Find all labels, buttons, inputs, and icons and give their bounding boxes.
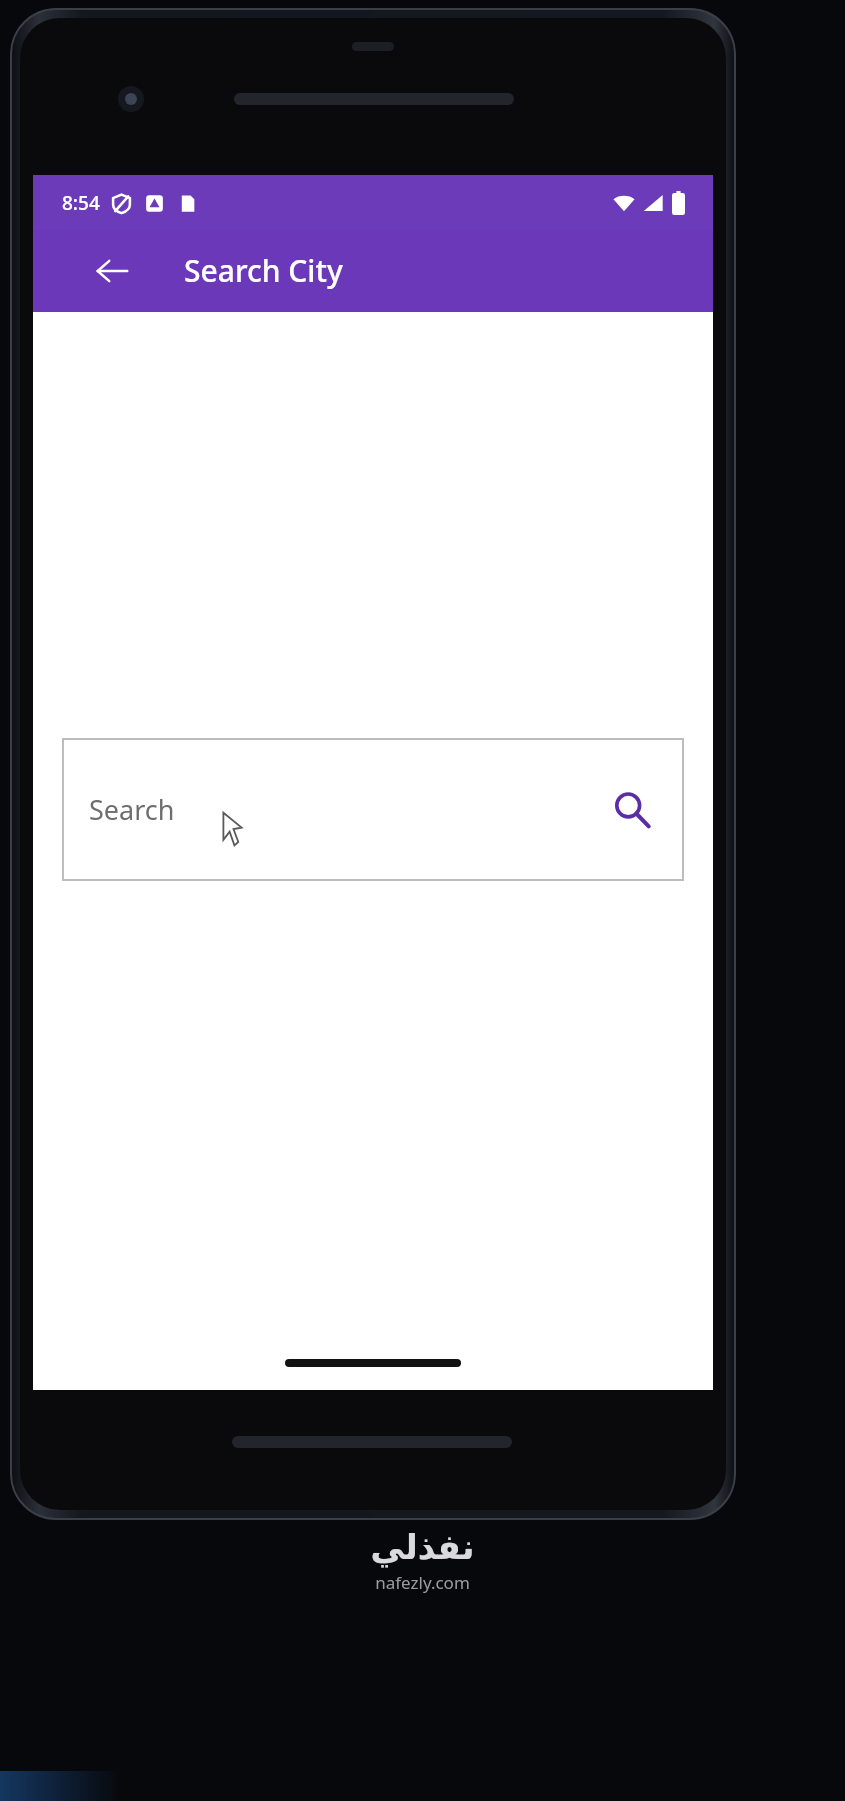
- staticText: نفذلي: [370, 1527, 475, 1567]
- button[interactable]: Search: [62, 738, 684, 881]
- button[interactable]: Search: [608, 786, 656, 834]
- staticText: Search City: [184, 250, 343, 291]
- staticText: nafezly.com: [375, 1571, 470, 1594]
- button[interactable]: Back: [80, 239, 144, 303]
- staticText: 8:54: [62, 190, 100, 216]
- staticText: Search: [89, 791, 608, 828]
